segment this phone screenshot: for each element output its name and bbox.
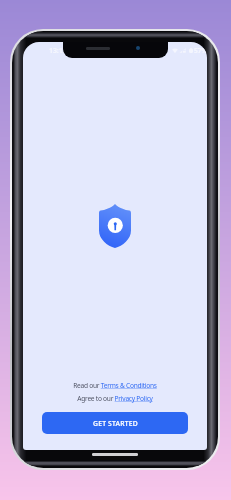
staticText: 57% <box>194 46 207 55</box>
button[interactable]: Read our Terms & Conditions <box>73 381 157 390</box>
staticText: GET STARTED <box>93 419 138 428</box>
staticText: 13:13 <box>49 46 67 56</box>
button[interactable]: Agree to our Privacy Policy <box>77 394 153 403</box>
button[interactable]: GET STARTED <box>42 412 188 434</box>
